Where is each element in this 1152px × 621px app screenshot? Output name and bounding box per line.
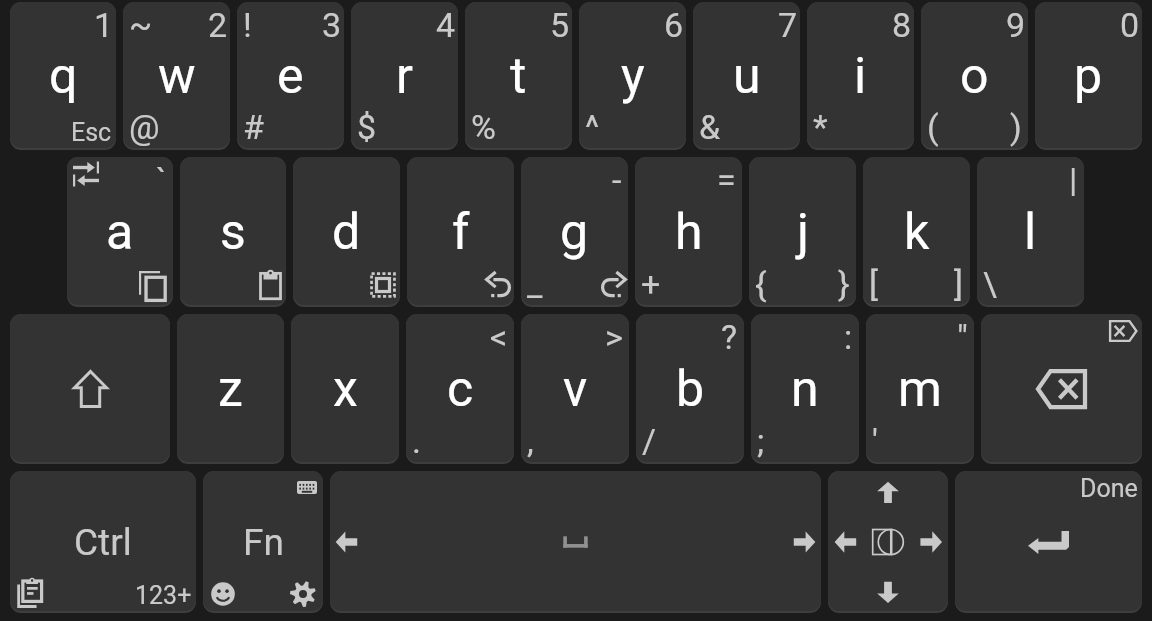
button[interactable]: v (521, 314, 629, 464)
button[interactable]: Enter (955, 471, 1142, 613)
button[interactable]: h (635, 157, 742, 307)
staticText: ? (721, 317, 738, 357)
staticText: = (717, 160, 736, 200)
staticText: ( (927, 107, 939, 147)
button[interactable]: t (465, 2, 572, 150)
staticText: v (563, 360, 588, 419)
staticText: . (412, 421, 421, 461)
staticText: r (396, 47, 413, 106)
button[interactable]: b (636, 314, 744, 464)
button[interactable]: Space (330, 471, 821, 613)
staticText: f (452, 203, 470, 262)
staticText: \ (983, 264, 997, 304)
staticText: : (844, 317, 853, 357)
button[interactable]: o (921, 2, 1028, 150)
staticText: ! (243, 5, 252, 45)
staticText: % (471, 107, 496, 147)
staticText: 6 (664, 5, 684, 45)
button[interactable]: j (749, 157, 856, 307)
staticText: ] (954, 264, 964, 304)
staticText: @ (129, 107, 160, 147)
staticText: a (106, 203, 134, 262)
staticText: Fn (243, 521, 284, 564)
button[interactable]: z (177, 314, 284, 464)
staticText: z (218, 360, 243, 419)
staticText: b (676, 360, 705, 419)
staticText: & (699, 107, 721, 147)
button[interactable]: d (293, 157, 400, 307)
staticText: p (1074, 47, 1103, 106)
staticText: j (797, 203, 809, 262)
staticText: / (642, 421, 657, 461)
button[interactable]: Backspace (981, 314, 1142, 464)
staticText: u (733, 47, 761, 106)
button[interactable]: y (579, 2, 686, 150)
staticText: 7 (778, 5, 798, 45)
staticText: ) (1010, 107, 1022, 147)
staticText: + (641, 264, 661, 304)
staticText: _ (527, 264, 543, 304)
staticText: 123+ (135, 581, 192, 610)
button[interactable]: Fn (203, 471, 323, 613)
staticText: - (612, 160, 622, 200)
staticText: 3 (322, 5, 342, 45)
button[interactable]: k (863, 157, 970, 307)
staticText: q (49, 47, 78, 106)
staticText: } (838, 264, 850, 304)
button[interactable]: u (693, 2, 800, 150)
button[interactable]: Ctrl (10, 471, 196, 613)
staticText: i (854, 47, 867, 106)
button[interactable]: l (977, 157, 1084, 307)
staticText: 2 (208, 5, 228, 45)
staticText: x (333, 360, 358, 419)
staticText: 5 (550, 5, 570, 45)
staticText: ' (872, 421, 878, 461)
staticText: [ (869, 264, 879, 304)
button[interactable]: n (751, 314, 859, 464)
button[interactable]: Arrow keys (828, 471, 948, 613)
staticText: n (791, 360, 819, 419)
button[interactable]: p (1035, 2, 1142, 150)
staticText: Done (1080, 474, 1138, 503)
staticText: m (898, 360, 942, 419)
staticText: 8 (892, 5, 912, 45)
staticText: ~ (129, 5, 153, 45)
staticText: ; (757, 421, 765, 461)
staticText: Ctrl (74, 521, 132, 564)
staticText: $ (357, 107, 377, 147)
staticText: y (621, 47, 645, 106)
staticText: , (527, 421, 534, 461)
staticText: > (605, 317, 623, 357)
button[interactable]: Shift (10, 314, 170, 464)
staticText: * (813, 107, 828, 147)
button[interactable]: r (351, 2, 458, 150)
staticText: ` (156, 160, 167, 200)
staticText: l (1024, 203, 1037, 262)
staticText: { (755, 264, 767, 304)
button[interactable]: i (807, 2, 914, 150)
staticText: " (957, 317, 968, 357)
button[interactable]: e (237, 2, 344, 150)
button[interactable]: x (291, 314, 399, 464)
button[interactable]: s (180, 157, 286, 307)
button[interactable]: q (10, 2, 116, 150)
button[interactable]: f (407, 157, 514, 307)
staticText: Esc (71, 118, 112, 147)
staticText: 1 (94, 5, 114, 45)
button[interactable]: w (123, 2, 230, 150)
button[interactable]: a (67, 157, 173, 307)
staticText: ^ (585, 107, 600, 147)
staticText: # (243, 107, 264, 147)
staticText: 0 (1120, 5, 1140, 45)
staticText: | (1069, 160, 1078, 200)
staticText: 9 (1006, 5, 1026, 45)
staticText: s (220, 203, 246, 262)
staticText: c (447, 360, 474, 419)
staticText: 4 (436, 5, 456, 45)
staticText: t (510, 47, 527, 106)
staticText: w (158, 47, 196, 106)
staticText: g (560, 203, 589, 262)
button[interactable]: c (406, 314, 514, 464)
button[interactable]: m (866, 314, 974, 464)
button[interactable]: g (521, 157, 628, 307)
